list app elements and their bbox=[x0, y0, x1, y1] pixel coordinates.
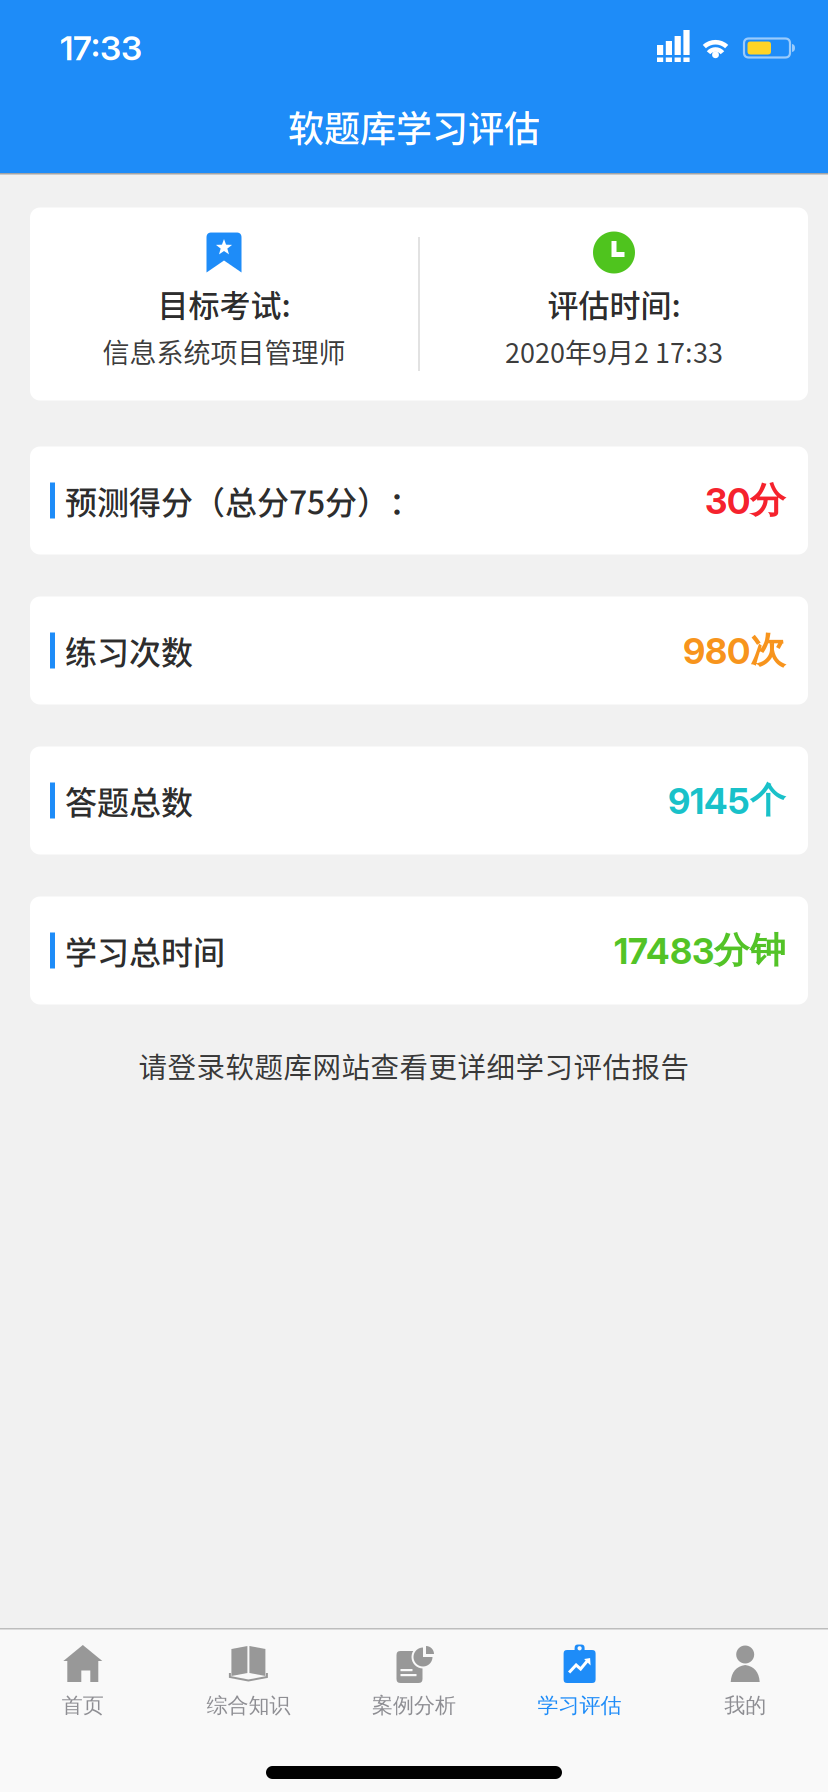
button[interactable]: 首页 bbox=[0, 1644, 166, 1718]
staticText: 980次 bbox=[683, 629, 786, 672]
staticText: 目标考试: bbox=[157, 281, 290, 325]
button[interactable]: 综合知识 bbox=[166, 1644, 331, 1718]
button[interactable]: 我的 bbox=[662, 1644, 828, 1718]
staticText: 30分 bbox=[705, 479, 786, 522]
staticText: 答题总数 bbox=[65, 778, 193, 823]
staticText: 预测得分（总分75分）： bbox=[65, 478, 421, 523]
staticText: 首页 bbox=[62, 1692, 104, 1718]
staticText: 综合知识 bbox=[206, 1692, 290, 1718]
button[interactable]: 案例分析 bbox=[331, 1644, 497, 1718]
staticText: 17483分钟 bbox=[614, 929, 786, 972]
staticText: 练习次数 bbox=[65, 628, 193, 673]
staticText: 学习评估 bbox=[538, 1692, 622, 1718]
staticText: 9145个 bbox=[668, 779, 786, 822]
staticText: 案例分析 bbox=[372, 1692, 456, 1718]
staticText: 信息系统项目管理师 bbox=[102, 332, 345, 370]
staticText: 评估时间: bbox=[547, 281, 680, 325]
staticText: 学习总时间 bbox=[65, 928, 225, 973]
staticText: 请登录软题库网站查看更详细学习评估报告 bbox=[138, 1045, 689, 1086]
staticText: 17:33 bbox=[60, 28, 142, 68]
staticText: 2020年9月2 17:33 bbox=[505, 332, 723, 370]
staticText: 我的 bbox=[724, 1692, 766, 1718]
staticText: 软题库学习评估 bbox=[288, 101, 540, 152]
button[interactable]: 学习评估 bbox=[497, 1644, 662, 1718]
